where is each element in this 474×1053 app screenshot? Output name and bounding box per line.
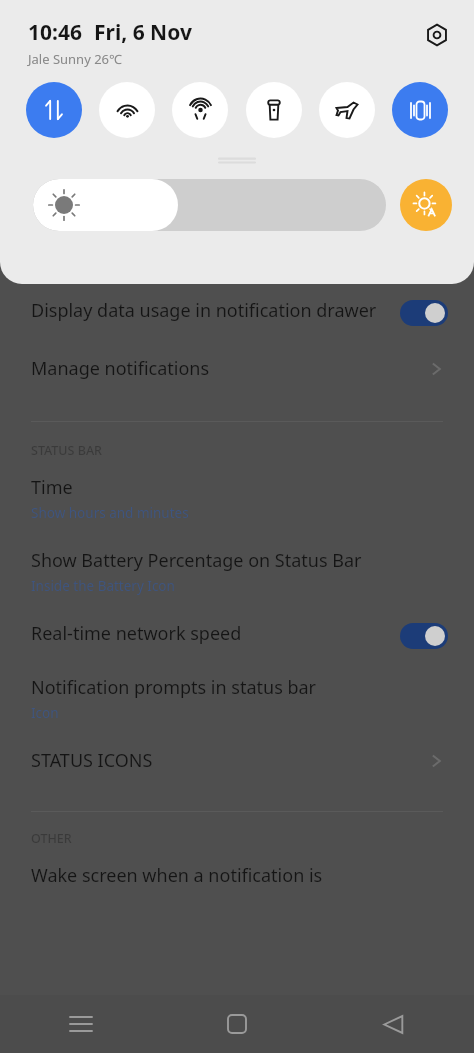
staticText: Display data usage in notification drawe… — [31, 298, 377, 323]
staticText: Show hours and minutes — [31, 504, 189, 522]
button[interactable]: Home — [214, 1001, 260, 1047]
button[interactable]: Manage notifications — [0, 338, 474, 395]
button[interactable]: Settings — [420, 18, 454, 52]
button[interactable]: Toggle — [400, 300, 448, 326]
button[interactable]: Recent apps — [58, 1001, 104, 1047]
staticText: Show Battery Percentage on Status Bar — [31, 548, 362, 573]
button[interactable]: Brightness — [33, 179, 386, 231]
button[interactable]: STATUS ICONS — [0, 734, 474, 787]
button[interactable]: Time — [0, 461, 474, 534]
staticText: Fri, 6 Nov — [94, 18, 192, 47]
staticText: Real-time network speed — [31, 621, 242, 646]
button[interactable]: Toggle — [400, 623, 448, 649]
button[interactable]: Hotspot — [172, 82, 228, 138]
staticText: Icon — [31, 704, 59, 722]
staticText: Notification prompts in status bar — [31, 675, 317, 700]
button[interactable]: Auto brightness — [400, 179, 452, 231]
staticText: Jale Sunny 26℃ — [28, 50, 122, 68]
button[interactable]: Display data usage in notification drawe… — [0, 284, 474, 338]
staticText: Wake screen when a notification is — [31, 863, 323, 888]
staticText: Inside the Battery Icon — [31, 577, 175, 595]
staticText: 10:46 — [28, 18, 82, 47]
staticText: OTHER — [31, 830, 72, 847]
button[interactable]: Back — [370, 1001, 416, 1047]
button[interactable]: Show Battery Percentage on Status Bar — [0, 534, 474, 607]
button[interactable]: Aeroplane mode — [319, 82, 375, 138]
button[interactable]: Vibrate — [392, 82, 448, 138]
staticText: STATUS ICONS — [31, 748, 153, 773]
button[interactable]: Notification prompts in status bar — [0, 661, 474, 734]
staticText: STATUS BAR — [31, 442, 102, 459]
button[interactable]: Real-time network speed — [0, 607, 474, 661]
staticText: Time — [31, 475, 73, 500]
button[interactable]: Wi-Fi — [99, 82, 155, 138]
staticText: Manage notifications — [31, 356, 210, 381]
button[interactable]: Mobile data — [26, 82, 82, 138]
button[interactable]: Flashlight — [246, 82, 302, 138]
